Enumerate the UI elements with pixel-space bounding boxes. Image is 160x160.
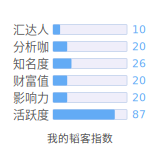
staticText: 20 — [132, 91, 146, 104]
staticText: 20 — [132, 40, 146, 53]
staticText: 财富值 — [13, 72, 49, 89]
staticText: 20 — [132, 74, 146, 87]
staticText: 分析咖 — [13, 38, 49, 55]
staticText: 87 — [132, 108, 146, 121]
staticText: 10 — [132, 23, 146, 36]
staticText: 我的韬客指数 — [47, 130, 113, 145]
staticText: 知名度 — [13, 55, 49, 72]
staticText: 活跃度 — [13, 106, 49, 123]
staticText: 影响力 — [13, 89, 49, 106]
staticText: 26 — [132, 57, 146, 70]
staticText: 汇达人 — [13, 21, 49, 38]
